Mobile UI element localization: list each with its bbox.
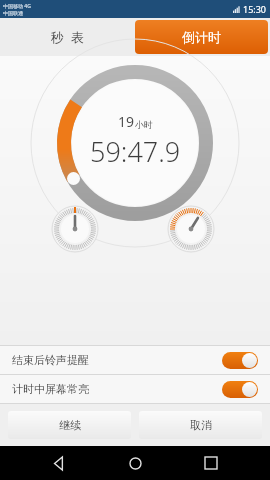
button[interactable]: 取消 — [139, 411, 262, 439]
staticText: 结束后铃声提醒 — [12, 353, 89, 367]
button[interactable]: Home — [118, 446, 152, 480]
button[interactable]: Toggle — [222, 352, 258, 369]
button[interactable]: 计时中屏幕常亮 — [0, 375, 270, 403]
staticText: 59:47.9 — [90, 133, 181, 170]
other: Dial — [168, 206, 214, 252]
button[interactable]: 结束后铃声提醒 — [0, 346, 270, 374]
other: Dial — [52, 206, 98, 252]
staticText: 15:30 — [243, 3, 267, 15]
staticText: 倒计时 — [182, 29, 221, 45]
staticText: 取消 — [190, 418, 212, 432]
button[interactable]: 倒计时 — [135, 20, 268, 54]
button[interactable]: Back — [42, 446, 76, 480]
staticText: 继续 — [59, 418, 81, 432]
staticText: 小时 — [135, 119, 153, 130]
staticText: 中国联通 — [3, 10, 23, 16]
button[interactable]: Toggle — [222, 381, 258, 398]
staticText: 秒 表 — [51, 28, 84, 46]
staticText: 中国移动 4G — [3, 3, 31, 10]
button[interactable]: Recents — [194, 446, 228, 480]
staticText: 19 — [118, 112, 135, 131]
button[interactable]: 继续 — [8, 411, 131, 439]
button[interactable]: 秒 表 — [0, 18, 135, 56]
staticText: 计时中屏幕常亮 — [12, 382, 89, 396]
